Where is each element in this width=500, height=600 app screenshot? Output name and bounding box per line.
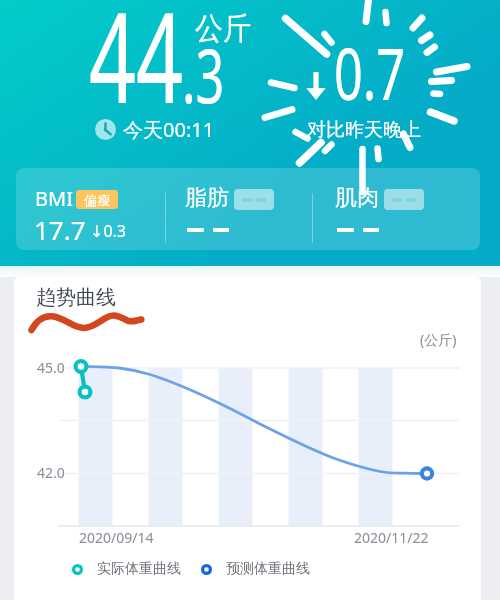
staticText: 预测体重曲线 [226, 560, 310, 578]
staticText: 0.7 [334, 23, 405, 121]
staticText: 对比昨天晚上 [307, 118, 421, 142]
staticText: 今天00:11 [123, 116, 215, 143]
button[interactable]: 预测体重曲线 [201, 558, 310, 580]
staticText: 趋势曲线 [36, 285, 116, 310]
other: Decrease [306, 72, 326, 100]
button[interactable]: BMI [36, 168, 176, 250]
staticText: 44 [89, 0, 183, 139]
staticText: 偏瘦 [84, 192, 110, 208]
staticText: 42.0 [37, 463, 65, 482]
staticText: 17.7 [34, 212, 86, 247]
button[interactable]: 肌肉 [336, 168, 476, 250]
staticText: ↓0.3 [90, 220, 126, 242]
staticText: (公斤) [420, 330, 457, 349]
staticText: BMI [35, 185, 73, 212]
staticText: .3 [182, 23, 225, 125]
button[interactable]: 实际体重曲线 [72, 558, 181, 580]
staticText: 实际体重曲线 [97, 560, 181, 578]
staticText: 公斤 [195, 9, 251, 48]
other: Measurement time [95, 119, 116, 140]
staticText: 肌肉 [335, 184, 379, 212]
staticText: 脂肪 [185, 184, 229, 212]
button[interactable]: 脂肪 [186, 168, 326, 250]
staticText: 2020/09/14 [79, 528, 154, 547]
staticText: 2020/11/22 [354, 528, 429, 547]
staticText: 45.0 [37, 358, 65, 377]
